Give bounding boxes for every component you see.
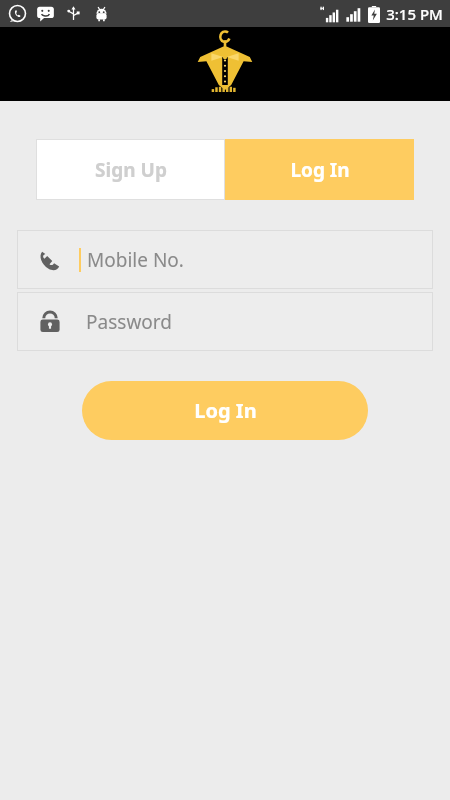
button[interactable]: Password xyxy=(17,292,433,351)
button[interactable]: Log In xyxy=(225,139,414,200)
button[interactable]: Mobile No. xyxy=(17,230,433,289)
button[interactable]: Sign Up xyxy=(36,139,225,200)
staticText: Log In xyxy=(194,397,257,424)
staticText: Password xyxy=(86,309,172,335)
button[interactable]: Log In xyxy=(82,381,368,440)
staticText: Mobile No. xyxy=(87,247,184,273)
staticText: Log In xyxy=(290,157,350,183)
other: Dhobi logo xyxy=(194,29,256,99)
staticText: Sign Up xyxy=(95,157,167,183)
staticText: 3:15 PM xyxy=(386,4,443,24)
